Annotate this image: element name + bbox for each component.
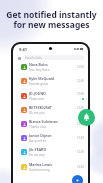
- staticText: 9:41: [19, 47, 27, 52]
- button[interactable]: Janice Dijeon: [13, 131, 88, 145]
- button[interactable]: Search chats: [23, 55, 84, 60]
- button[interactable]: Jib-YEARD: [13, 145, 88, 159]
- staticText: 12:30: [77, 79, 84, 83]
- staticText: 12:30: [77, 150, 84, 154]
- button[interactable]: New chat: [72, 175, 83, 183]
- staticText: 12:30: [77, 92, 84, 96]
- staticText: Janice Dijeon: [29, 133, 52, 138]
- staticText: Nora Bolcs: [29, 62, 48, 67]
- button[interactable]: Notifications: [78, 109, 95, 126]
- staticText: Are you free: [29, 139, 47, 143]
- staticText: 12:30: [77, 65, 84, 69]
- staticText: Get notified instantly for new messages: [0, 9, 103, 31]
- staticText: 12:30: [77, 106, 84, 110]
- staticText: BETSY40254T: [29, 105, 52, 110]
- staticText: Search chats: [25, 56, 42, 60]
- staticText: Photo sent: [29, 97, 45, 101]
- staticText: 12:30: [77, 122, 84, 126]
- staticText: Bianca Suleiman: [29, 119, 58, 124]
- button[interactable]: Bianca Suleiman: [13, 117, 88, 131]
- staticText: Ok see you: [29, 111, 45, 115]
- button[interactable]: Nora Bolcs: [13, 60, 88, 74]
- button[interactable]: Menu: [17, 56, 21, 60]
- staticText: You: Hey there: [29, 68, 50, 72]
- button[interactable]: Marina Lewis: [13, 160, 88, 174]
- staticText: JD-JOUND: [29, 91, 46, 96]
- staticText: Jib-YEARD: [29, 147, 47, 152]
- staticText: Marina Lewis: [29, 162, 53, 167]
- button[interactable]: BETSY40254T: [13, 103, 88, 117]
- button[interactable]: JD-JOUND: [13, 89, 88, 103]
- staticText: Kylie McQuaid: [29, 76, 54, 81]
- staticText: Sounds great: [29, 82, 48, 86]
- button[interactable]: Kylie McQuaid: [13, 74, 88, 88]
- staticText: 12:30: [77, 136, 84, 140]
- staticText: Good morning: [29, 168, 50, 172]
- staticText: Thanks a lot: [29, 125, 47, 129]
- staticText: On my way: [29, 153, 45, 157]
- staticText: 12:30: [77, 165, 84, 169]
